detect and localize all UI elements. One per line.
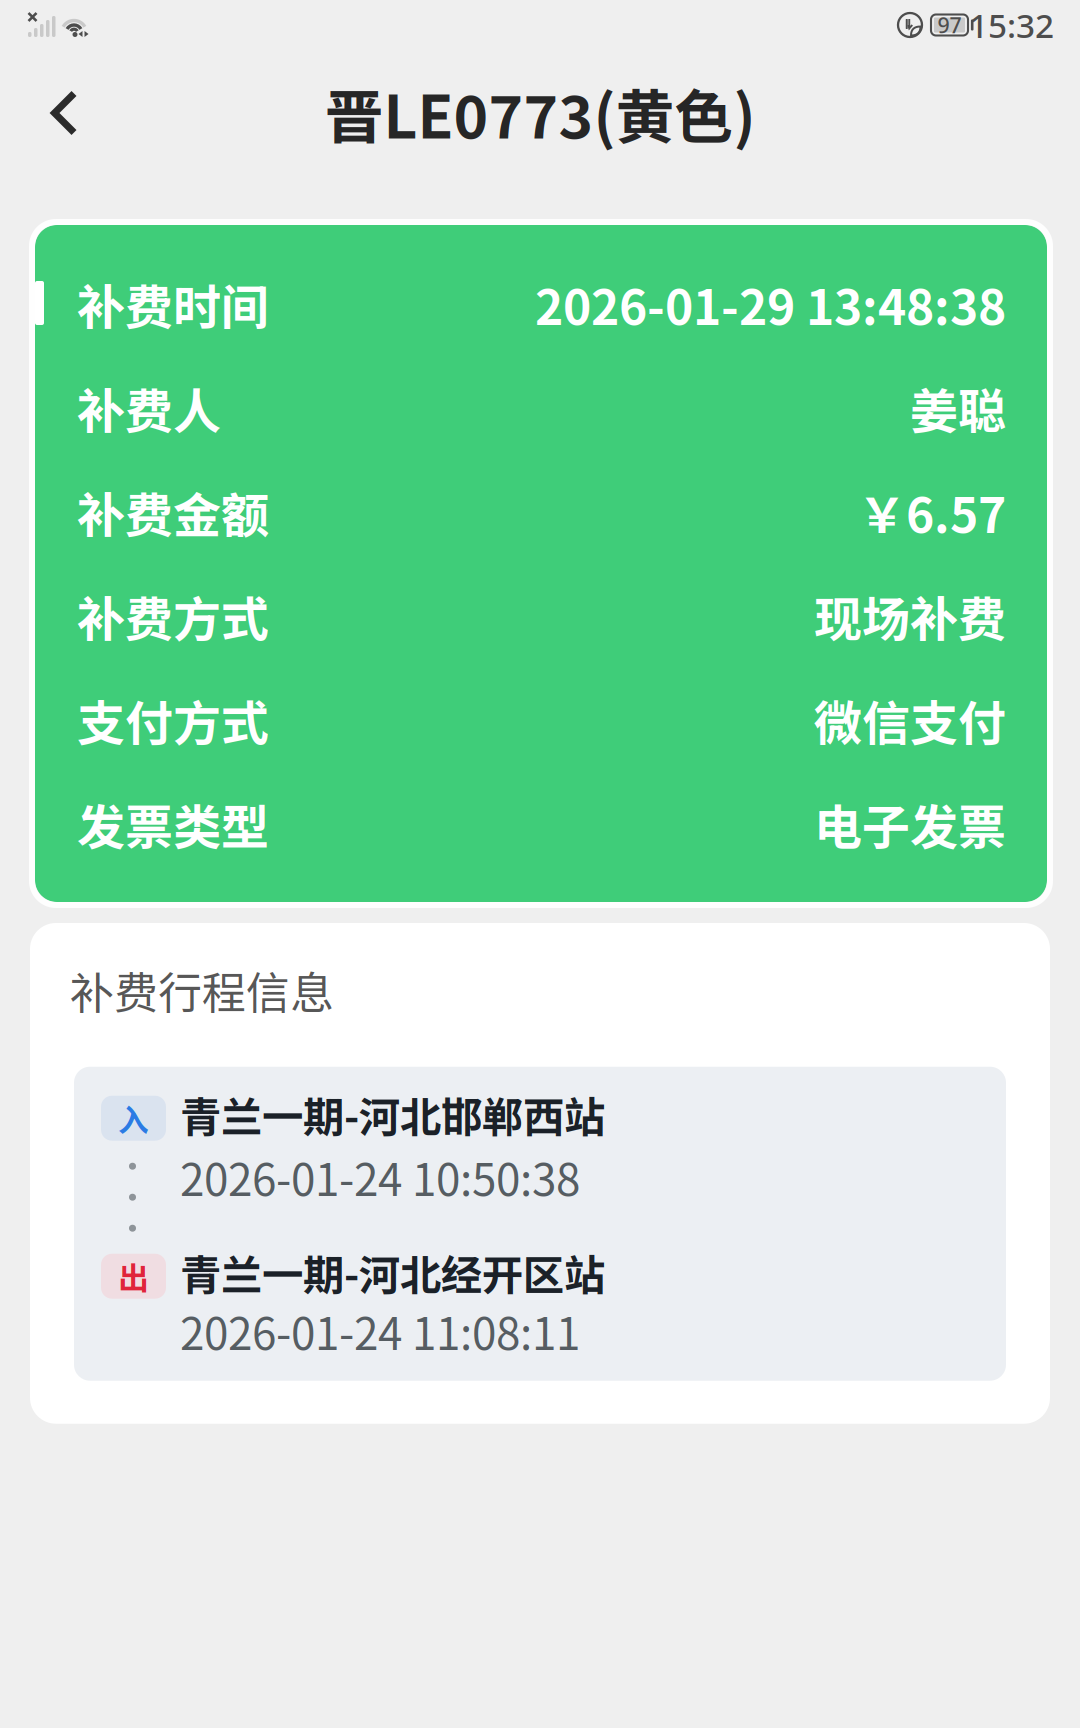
staticText: ￥6.57	[858, 477, 1006, 547]
staticText: 补费行程信息	[70, 958, 334, 1022]
staticText: 电子发票	[814, 789, 1006, 859]
staticText: 2026-01-24 11:08:11	[180, 1299, 580, 1363]
staticText: 青兰一期-河北邯郸西站	[180, 1084, 605, 1144]
staticText: 补费金额	[77, 477, 269, 547]
staticText: 青兰一期-河北经开区站	[180, 1242, 605, 1302]
staticText: 补费人	[77, 373, 221, 443]
staticText: 姜聪	[910, 373, 1006, 443]
staticText: 2026-01-29 13:48:38	[535, 269, 1006, 339]
staticText: 补费方式	[77, 581, 269, 651]
staticText: 发票类型	[77, 789, 269, 859]
staticText: 入	[118, 1096, 149, 1140]
staticText: 15:32	[969, 3, 1054, 47]
staticText: 97	[937, 11, 961, 39]
staticText: 出	[118, 1254, 149, 1298]
button[interactable]: Back	[0, 65, 108, 161]
staticText: 微信支付	[814, 685, 1006, 755]
staticText: 2026-01-24 10:50:38	[180, 1145, 580, 1209]
staticText: 晋LE0773(黄色)	[324, 70, 755, 155]
staticText: 现场补费	[814, 581, 1006, 651]
staticText: 补费时间	[77, 269, 269, 339]
staticText: 支付方式	[77, 685, 269, 755]
